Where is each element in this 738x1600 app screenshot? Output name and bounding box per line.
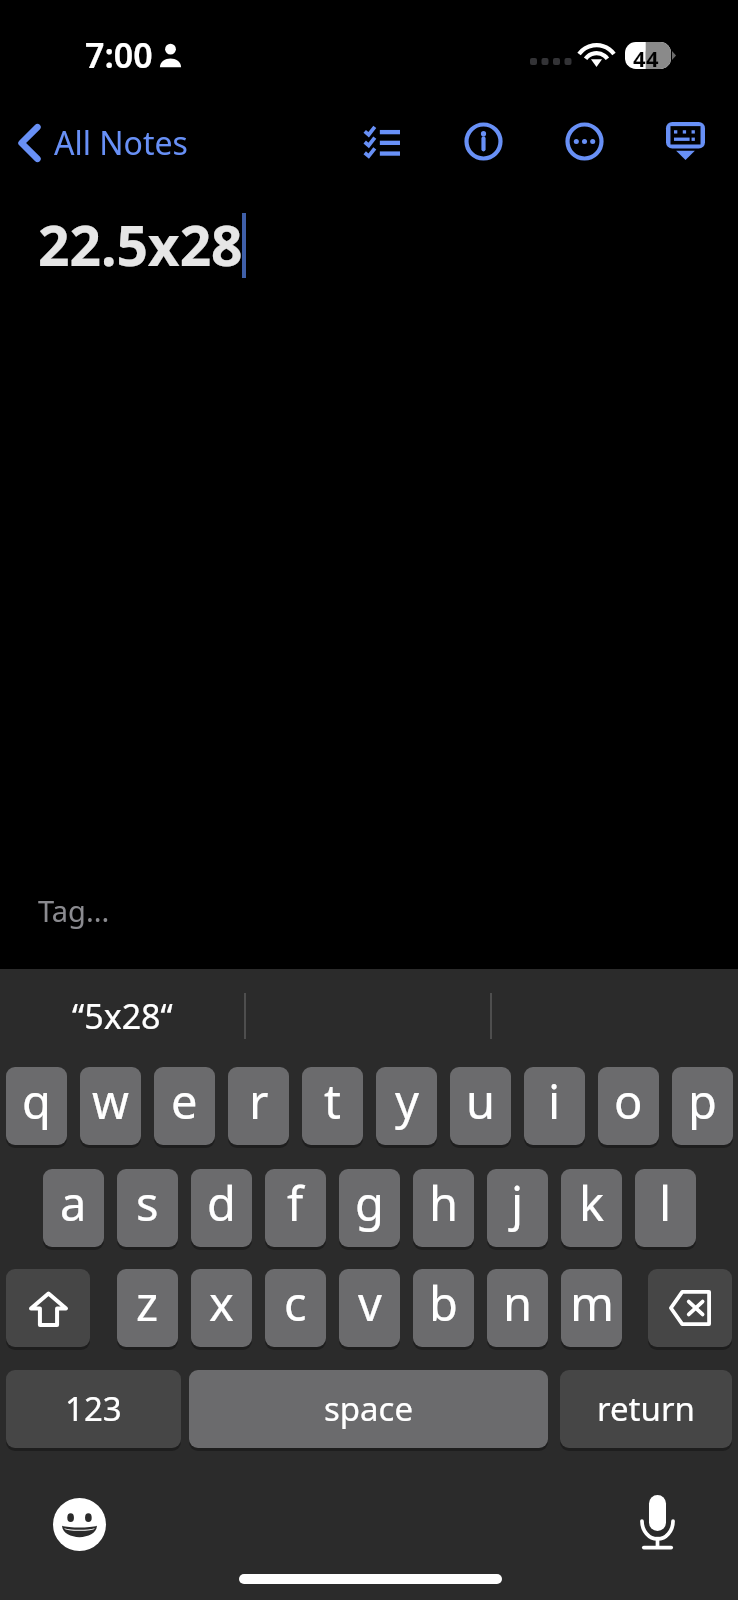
staticText: All Notes (54, 121, 188, 165)
button[interactable]: 123 (6, 1370, 181, 1448)
button[interactable]: o (598, 1067, 659, 1145)
button[interactable]: x (191, 1269, 252, 1347)
button[interactable]: m (561, 1269, 622, 1347)
staticText: x (209, 1271, 234, 1335)
button[interactable]: k (561, 1169, 622, 1247)
staticText: g (355, 1171, 384, 1235)
button[interactable]: e (154, 1067, 215, 1145)
button[interactable]: Tag... (28, 880, 158, 942)
button[interactable]: h (413, 1169, 474, 1247)
button[interactable]: s (117, 1169, 178, 1247)
button[interactable]: Hide keyboard (651, 107, 719, 175)
button[interactable]: space (189, 1370, 548, 1448)
staticText: r (249, 1069, 269, 1133)
button[interactable]: return (560, 1370, 732, 1448)
button[interactable]: i (524, 1067, 585, 1145)
button[interactable]: d (191, 1169, 252, 1247)
staticText: k (579, 1171, 605, 1235)
button[interactable]: p (672, 1067, 733, 1145)
staticText: f (287, 1171, 304, 1235)
staticText: 22.5x28 (38, 207, 243, 282)
staticText: c (284, 1271, 307, 1335)
button[interactable]: w (80, 1067, 141, 1145)
staticText: u (466, 1069, 496, 1133)
button[interactable]: a (43, 1169, 104, 1247)
staticText: m (570, 1271, 614, 1335)
button[interactable]: Checklist (348, 107, 416, 175)
staticText: w (92, 1069, 129, 1133)
staticText: return (597, 1386, 695, 1431)
button[interactable]: g (339, 1169, 400, 1247)
button[interactable]: b (413, 1269, 474, 1347)
staticText: p (688, 1069, 717, 1133)
staticText: 123 (65, 1386, 122, 1431)
button[interactable]: Backspace (648, 1269, 732, 1347)
button[interactable]: r (228, 1067, 289, 1145)
staticText: b (429, 1271, 458, 1335)
button[interactable]: z (117, 1269, 178, 1347)
button[interactable]: n (487, 1269, 548, 1347)
button[interactable]: More (550, 107, 618, 175)
button[interactable]: l (635, 1169, 696, 1247)
staticText: Tag... (38, 891, 110, 930)
button[interactable]: v (339, 1269, 400, 1347)
button[interactable]: c (265, 1269, 326, 1347)
button[interactable]: Info (449, 107, 517, 175)
button[interactable]: f (265, 1169, 326, 1247)
staticText: l (659, 1171, 672, 1235)
button[interactable]: Shift (6, 1269, 90, 1347)
staticText: y (395, 1069, 419, 1133)
button[interactable]: Dictation (621, 1486, 693, 1558)
button[interactable]: j (487, 1169, 548, 1247)
button[interactable]: All Notes (13, 100, 194, 186)
staticText: o (614, 1069, 643, 1133)
button[interactable]: q (6, 1067, 67, 1145)
staticText: s (136, 1171, 159, 1235)
staticText: d (207, 1171, 236, 1235)
staticText: 7:00 (85, 32, 153, 78)
staticText: j (511, 1171, 524, 1235)
staticText: h (429, 1171, 459, 1235)
button[interactable]: t (302, 1067, 363, 1145)
staticText: i (548, 1069, 561, 1133)
button[interactable]: u (450, 1067, 511, 1145)
staticText: q (22, 1069, 51, 1133)
staticText: “5x28“ (72, 993, 173, 1039)
button[interactable]: Emoji (43, 1488, 115, 1560)
button[interactable]: “5x28“ (10, 981, 235, 1051)
staticText: t (324, 1069, 341, 1133)
staticText: 44 (633, 43, 660, 70)
staticText: n (503, 1271, 533, 1335)
staticText: space (324, 1386, 414, 1431)
button[interactable]: y (376, 1067, 437, 1145)
staticText: e (171, 1069, 198, 1133)
staticText: a (60, 1171, 87, 1235)
staticText: z (136, 1271, 159, 1335)
staticText: v (358, 1271, 382, 1335)
